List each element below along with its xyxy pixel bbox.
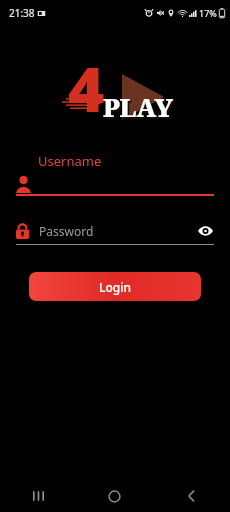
button[interactable]: Show password (196, 222, 214, 240)
button[interactable]: Back (153, 480, 230, 512)
staticText: PLAY (105, 92, 176, 126)
staticText: 17% (199, 7, 217, 19)
staticText: 4 (68, 46, 105, 124)
button[interactable]: Recents (0, 480, 76, 512)
button[interactable]: Home (76, 480, 153, 512)
button[interactable]: Password (16, 222, 214, 245)
button[interactable]: Login (29, 272, 201, 301)
button[interactable]: Username (16, 152, 214, 196)
staticText: PLAY (103, 90, 174, 124)
staticText: 21:38 (9, 6, 35, 20)
staticText: Login (99, 279, 131, 295)
staticText: Username (38, 152, 102, 170)
staticText: Password (39, 223, 196, 239)
